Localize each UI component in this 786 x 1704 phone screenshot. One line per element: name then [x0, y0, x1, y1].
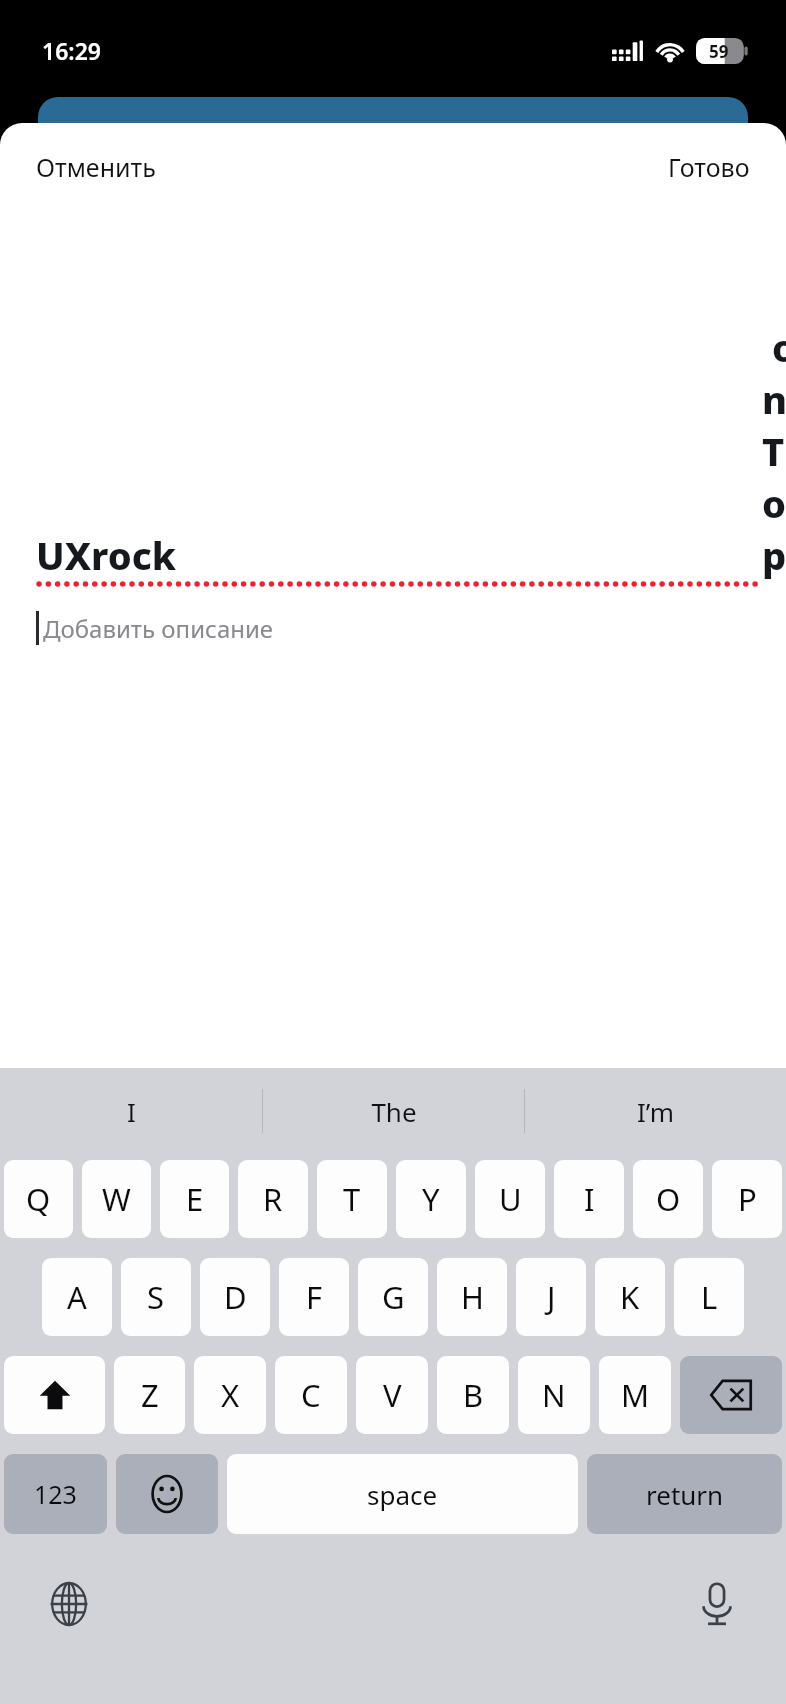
staticText: U: [499, 1178, 522, 1220]
button[interactable]: B: [437, 1356, 509, 1434]
button[interactable]: Change keyboard: [40, 1575, 98, 1633]
staticText: R: [263, 1178, 283, 1220]
button[interactable]: I’m: [525, 1068, 786, 1154]
staticText: G: [382, 1276, 405, 1318]
staticText: X: [221, 1374, 240, 1416]
button[interactable]: W: [82, 1160, 151, 1238]
button[interactable]: U: [475, 1160, 545, 1238]
staticText: I: [127, 1094, 136, 1129]
staticText: C: [301, 1374, 321, 1416]
button[interactable]: K: [595, 1258, 665, 1336]
staticText: K: [620, 1276, 640, 1318]
button[interactable]: UXrock: [36, 529, 176, 581]
button[interactable]: I: [0, 1068, 262, 1154]
staticText: M: [621, 1374, 650, 1416]
staticText: B: [463, 1374, 484, 1416]
staticText: D: [224, 1276, 247, 1318]
button[interactable]: C: [275, 1356, 347, 1434]
staticText: Q: [26, 1178, 51, 1220]
button[interactable]: Готово: [652, 140, 786, 194]
staticText: Добавить описание: [43, 612, 274, 645]
staticText: T: [343, 1178, 361, 1220]
button[interactable]: O: [633, 1160, 703, 1238]
button[interactable]: Emoji: [116, 1454, 218, 1534]
staticText: H: [461, 1276, 484, 1318]
button[interactable]: Q: [4, 1160, 73, 1238]
button[interactable]: The: [263, 1068, 524, 1154]
staticText: 123: [34, 1477, 77, 1511]
staticText: I’m: [637, 1094, 674, 1129]
button[interactable]: T: [317, 1160, 387, 1238]
staticText: The: [371, 1094, 417, 1129]
button[interactable]: Backspace: [680, 1356, 782, 1434]
button[interactable]: space: [227, 1454, 578, 1534]
button[interactable]: 123: [4, 1454, 107, 1534]
button[interactable]: P: [712, 1160, 782, 1238]
staticText: Отменить: [36, 150, 156, 184]
button[interactable]: Y: [396, 1160, 466, 1238]
button[interactable]: X: [194, 1356, 266, 1434]
staticText: Z: [141, 1374, 159, 1416]
staticText: Готово: [668, 150, 750, 184]
staticText: W: [102, 1178, 131, 1220]
staticText: J: [547, 1276, 556, 1318]
button[interactable]: Отменить: [0, 140, 172, 194]
button[interactable]: J: [516, 1258, 586, 1336]
button[interactable]: Z: [114, 1356, 185, 1434]
button[interactable]: I: [554, 1160, 624, 1238]
staticText: L: [701, 1276, 718, 1318]
button[interactable]: V: [356, 1356, 428, 1434]
button[interactable]: D: [200, 1258, 270, 1336]
button[interactable]: F: [279, 1258, 349, 1336]
button[interactable]: N: [518, 1356, 590, 1434]
staticText: F: [306, 1276, 323, 1318]
button[interactable]: Shift: [4, 1356, 105, 1434]
staticText: S: [147, 1276, 165, 1318]
staticText: return: [646, 1477, 724, 1512]
staticText: E: [186, 1178, 204, 1220]
button[interactable]: M: [599, 1356, 671, 1434]
staticText: 59: [709, 40, 729, 63]
staticText: P: [738, 1178, 757, 1220]
staticText: O: [656, 1178, 681, 1220]
button[interactable]: G: [358, 1258, 428, 1336]
button[interactable]: L: [674, 1258, 744, 1336]
staticText: V: [383, 1374, 402, 1416]
staticText: N: [542, 1374, 566, 1416]
staticText: I: [584, 1178, 595, 1220]
button[interactable]: A: [42, 1258, 112, 1336]
staticText: space: [367, 1477, 438, 1512]
button[interactable]: Dictation: [688, 1575, 746, 1633]
button[interactable]: R: [238, 1160, 308, 1238]
staticText: Y: [422, 1178, 440, 1220]
button[interactable]: H: [437, 1258, 507, 1336]
button[interactable]: Добавить описание: [36, 611, 274, 645]
staticText: 16:29: [42, 35, 101, 66]
button[interactable]: E: [160, 1160, 229, 1238]
button[interactable]: S: [121, 1258, 191, 1336]
staticText: A: [67, 1276, 87, 1318]
button[interactable]: return: [587, 1454, 782, 1534]
